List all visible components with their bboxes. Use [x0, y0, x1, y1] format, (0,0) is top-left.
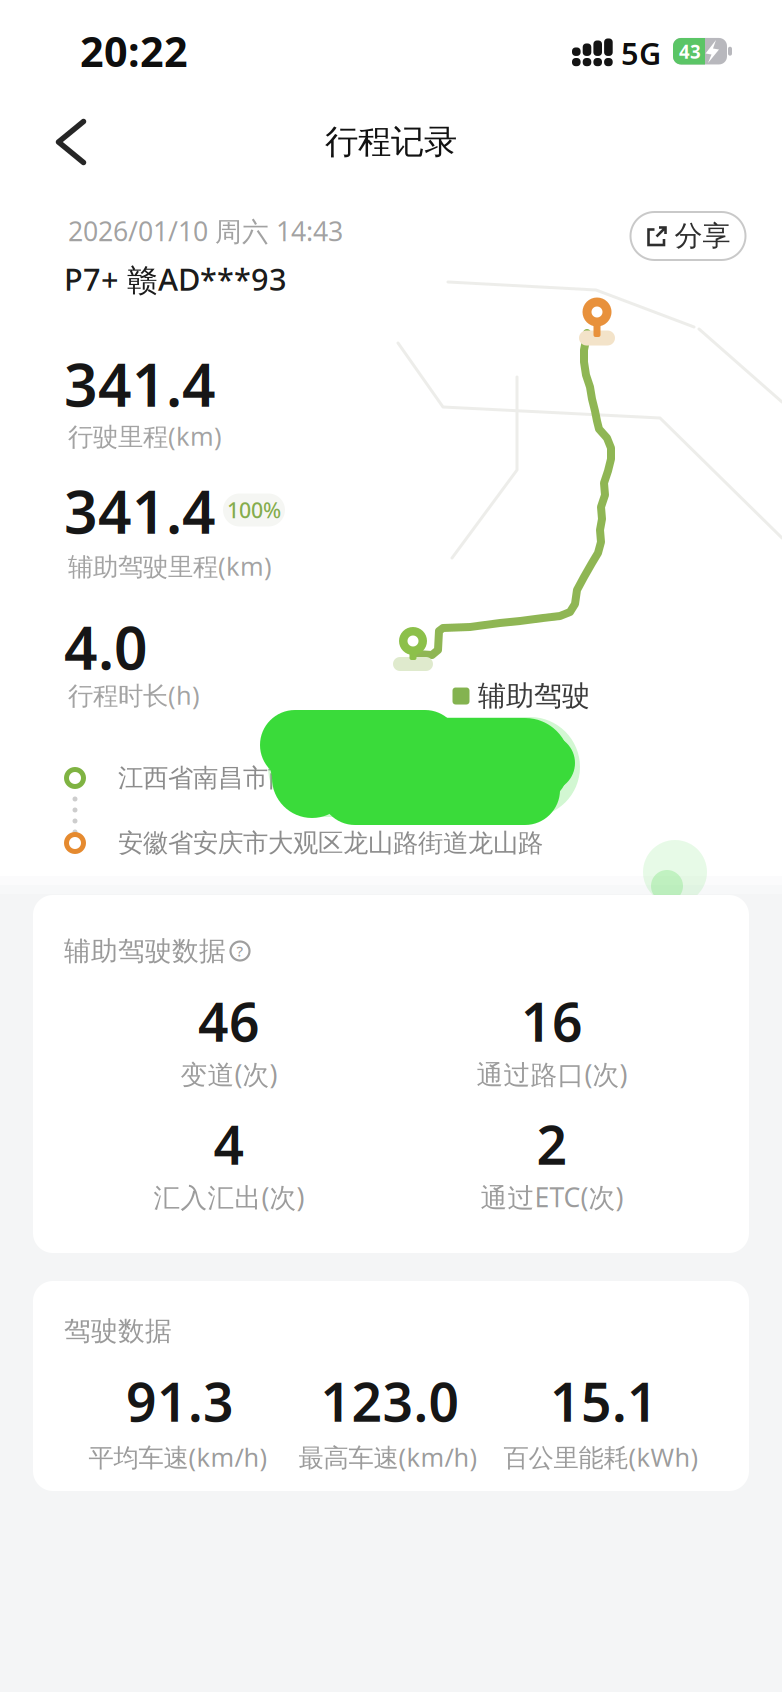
- staticText: 驾驶数据: [64, 1315, 172, 1347]
- staticText: 15.1: [550, 1366, 658, 1436]
- staticText: 43: [679, 39, 701, 64]
- staticText: P7+ 赣AD***93: [64, 259, 287, 299]
- button[interactable]: [48, 119, 93, 164]
- staticText: 辅助驾驶数据: [64, 935, 226, 967]
- staticText: 平均车速(km/h): [88, 1440, 267, 1474]
- staticText: 5G: [621, 33, 661, 73]
- staticText: 20:22: [80, 24, 188, 78]
- staticText: 通过路口(次): [476, 1056, 627, 1092]
- staticText: 百公里能耗(kWh): [503, 1440, 698, 1474]
- staticText: 汇入汇出(次): [153, 1179, 304, 1215]
- staticText: 行程时长(h): [68, 678, 200, 712]
- button[interactable]: 分享: [629, 211, 746, 261]
- staticText: 分享: [674, 219, 730, 253]
- staticText: 辅助驾驶里程(km): [68, 549, 272, 583]
- staticText: 341.4: [64, 345, 216, 423]
- staticText: 最高车速(km/h): [298, 1440, 477, 1474]
- staticText: 46: [198, 986, 260, 1056]
- staticText: 2026/01/10 周六 14:43: [68, 213, 343, 249]
- staticText: 通过ETC(次): [480, 1179, 623, 1215]
- staticText: 123.0: [320, 1366, 459, 1436]
- staticText: 4.0: [64, 608, 148, 686]
- staticText: 变道(次): [180, 1056, 277, 1092]
- staticText: 江西省南昌市南昌县莲塘镇: [118, 762, 418, 793]
- staticText: 安徽省安庆市大观区龙山路街道龙山路: [118, 827, 543, 858]
- button[interactable]: ?: [228, 939, 252, 963]
- staticText: 行程记录: [325, 121, 457, 162]
- staticText: 辅助驾驶: [478, 679, 590, 713]
- staticText: ?: [236, 941, 243, 961]
- staticText: 2: [536, 1109, 567, 1179]
- staticText: 4: [213, 1109, 244, 1179]
- staticText: 16: [521, 986, 583, 1056]
- staticText: 91.3: [126, 1366, 234, 1436]
- staticText: 100%: [227, 496, 281, 524]
- staticText: 行驶里程(km): [68, 419, 222, 453]
- staticText: 341.4: [64, 472, 216, 550]
